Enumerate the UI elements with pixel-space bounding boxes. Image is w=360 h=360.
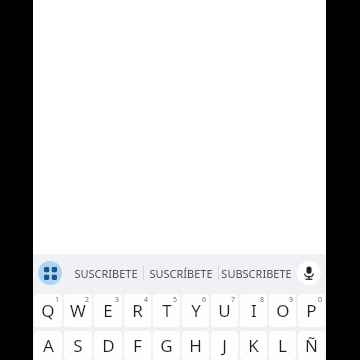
staticText: H bbox=[189, 334, 202, 357]
staticText: E bbox=[103, 299, 113, 322]
button[interactable]: R bbox=[124, 294, 151, 327]
staticText: Y bbox=[191, 299, 201, 322]
button[interactable]: F bbox=[124, 331, 151, 360]
button[interactable]: D bbox=[94, 331, 122, 360]
staticText: P bbox=[306, 299, 317, 322]
button[interactable]: SUSCRIBETE bbox=[68, 254, 143, 292]
button[interactable]: Ñ bbox=[298, 331, 325, 360]
button[interactable]: Q bbox=[34, 294, 62, 327]
staticText: SUSCRÍBETE bbox=[149, 266, 213, 281]
button[interactable]: G bbox=[153, 331, 180, 360]
staticText: 3 bbox=[115, 295, 120, 305]
button[interactable]: T bbox=[153, 294, 180, 327]
button[interactable]: SUSCRÍBETE bbox=[144, 254, 218, 292]
staticText: 5 bbox=[173, 295, 178, 305]
staticText: 0 bbox=[318, 295, 323, 305]
button[interactable]: J bbox=[211, 331, 238, 360]
staticText: G bbox=[160, 334, 173, 357]
button[interactable]: Voice input bbox=[297, 261, 321, 285]
button[interactable]: H bbox=[182, 331, 209, 360]
button[interactable]: E bbox=[94, 294, 122, 327]
staticText: 7 bbox=[231, 295, 236, 305]
button[interactable]: S bbox=[64, 331, 92, 360]
button[interactable]: I bbox=[240, 294, 267, 327]
staticText: K bbox=[248, 334, 259, 357]
button[interactable]: P bbox=[298, 294, 325, 327]
staticText: R bbox=[132, 299, 143, 322]
button[interactable]: A bbox=[34, 331, 62, 360]
staticText: D bbox=[102, 334, 115, 357]
staticText: I bbox=[251, 299, 257, 322]
staticText: J bbox=[222, 334, 227, 357]
staticText: 1 bbox=[55, 295, 60, 305]
button[interactable]: L bbox=[269, 331, 296, 360]
staticText: 9 bbox=[289, 295, 294, 305]
staticText: Q bbox=[41, 299, 55, 322]
staticText: O bbox=[276, 299, 290, 322]
staticText: 6 bbox=[202, 295, 207, 305]
staticText: S bbox=[73, 334, 83, 357]
staticText: SUBSCRIBETE bbox=[221, 266, 292, 281]
button[interactable]: SUBSCRIBETE bbox=[219, 254, 293, 292]
button[interactable]: K bbox=[240, 331, 267, 360]
button[interactable]: U bbox=[211, 294, 238, 327]
button[interactable]: Open sticker and emoji panel bbox=[38, 261, 62, 285]
staticText: F bbox=[133, 334, 142, 357]
button[interactable]: W bbox=[64, 294, 92, 327]
staticText: 8 bbox=[260, 295, 265, 305]
staticText: L bbox=[278, 334, 287, 357]
staticText: U bbox=[218, 299, 231, 322]
staticText: SUSCRIBETE bbox=[74, 266, 138, 281]
staticText: Ñ bbox=[305, 334, 318, 357]
button[interactable]: O bbox=[269, 294, 296, 327]
staticText: A bbox=[43, 334, 54, 357]
staticText: T bbox=[162, 299, 172, 322]
button[interactable]: Y bbox=[182, 294, 209, 327]
staticText: 4 bbox=[144, 295, 149, 305]
staticText: W bbox=[70, 299, 86, 322]
staticText: 2 bbox=[85, 295, 90, 305]
